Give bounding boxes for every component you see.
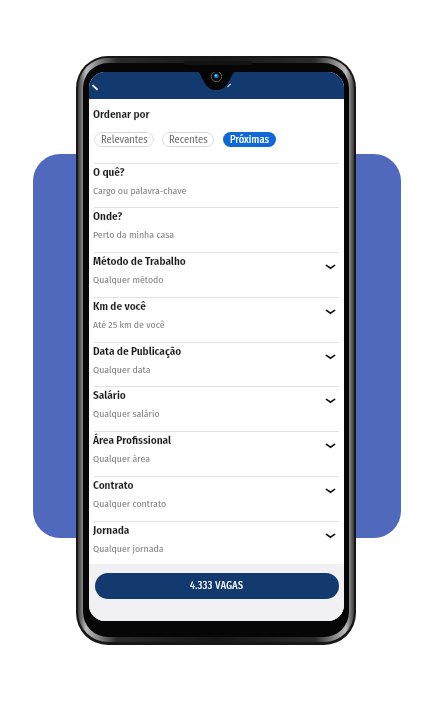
- staticText: Qualquer jornada: [93, 543, 164, 555]
- staticText: 4.333 VAGAS: [190, 580, 244, 592]
- button[interactable]: Método de Trabalho: [89, 252, 344, 297]
- button[interactable]: Próximas: [223, 132, 276, 147]
- staticText: Qualquer salário: [93, 408, 160, 420]
- staticText: Cargo ou palavra-chave: [93, 185, 187, 197]
- button[interactable]: Km de você: [89, 297, 344, 342]
- staticText: Km de você: [93, 300, 146, 313]
- button[interactable]: Contrato: [89, 476, 344, 521]
- staticText: Método de Trabalho: [93, 255, 186, 268]
- staticText: Até 25 km de você: [93, 319, 165, 331]
- staticText: Ordenar por: [93, 108, 150, 121]
- button[interactable]: O quê?: [89, 163, 344, 208]
- staticText: Recentes: [169, 133, 208, 146]
- staticText: O quê?: [93, 166, 125, 179]
- staticText: Data de Publicação: [93, 345, 182, 358]
- staticText: Jornada: [93, 524, 130, 537]
- staticText: Qualquer método: [93, 274, 164, 286]
- staticText: Perto da minha casa: [93, 229, 175, 241]
- staticText: Próximas: [230, 133, 269, 146]
- staticText: Onde?: [93, 210, 123, 223]
- staticText: Relevantes: [101, 133, 148, 146]
- staticText: Área Profissional: [93, 434, 172, 447]
- button[interactable]: Data de Publicação: [89, 342, 344, 387]
- staticText: Qualquer área: [93, 453, 150, 465]
- staticText: Salário: [93, 389, 126, 402]
- button[interactable]: Recentes: [162, 132, 214, 147]
- button[interactable]: Área Profissional: [89, 431, 344, 476]
- button[interactable]: Onde?: [89, 207, 344, 252]
- button[interactable]: Relevantes: [94, 132, 154, 147]
- staticText: Qualquer data: [93, 364, 151, 376]
- staticText: Qualquer contrato: [93, 498, 167, 510]
- button[interactable]: Jornada: [89, 521, 344, 566]
- button[interactable]: Salário: [89, 386, 344, 431]
- staticText: Contrato: [93, 479, 134, 492]
- button[interactable]: 4.333 VAGAS: [95, 573, 339, 599]
